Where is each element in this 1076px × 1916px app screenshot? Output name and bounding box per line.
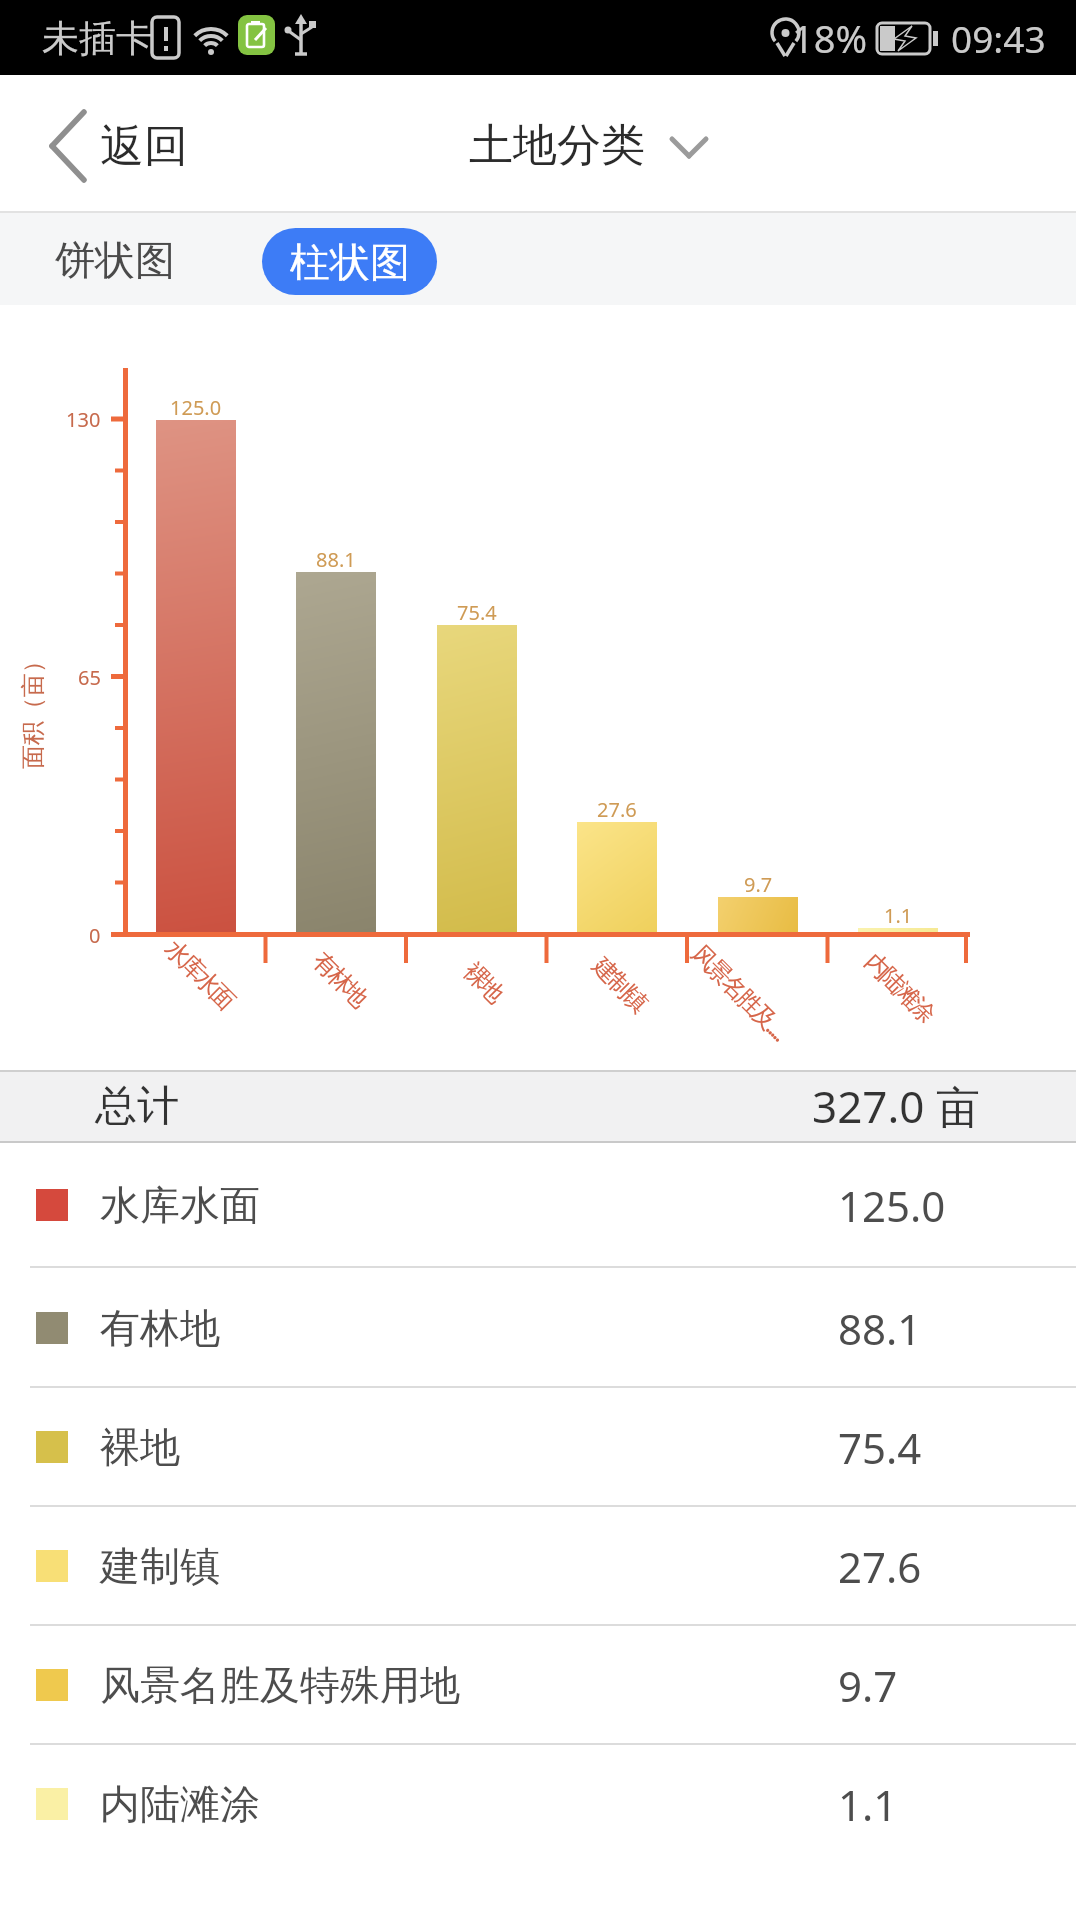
staticText: 327.0 亩	[812, 1076, 980, 1136]
staticText: 柱状图	[290, 237, 410, 287]
staticText: 65	[78, 664, 101, 691]
staticText: 有林地	[308, 947, 373, 1013]
button[interactable]	[30, 105, 230, 185]
staticText: 裸地	[458, 957, 509, 1008]
staticText: 9.7	[744, 871, 773, 898]
button[interactable]: 风景名胜及特殊用地	[0, 1626, 1076, 1745]
staticText: 裸地	[100, 1422, 180, 1472]
button[interactable]: 柱状图	[262, 228, 437, 295]
staticText: 总计	[95, 1080, 179, 1133]
staticText: 1.1	[838, 1776, 898, 1833]
staticText: 内陆滩涂	[100, 1779, 260, 1829]
staticText: 建制镇	[588, 952, 653, 1018]
button[interactable]: 裸地	[0, 1388, 1076, 1507]
staticText: 未插卡	[42, 15, 153, 62]
staticText: 130	[66, 406, 101, 433]
staticText: 27.6	[597, 796, 637, 823]
button[interactable]: 建制镇	[0, 1507, 1076, 1626]
staticText: 内陆滩涂	[860, 948, 940, 1028]
staticText: 有林地	[100, 1303, 220, 1353]
staticText: 水库水面	[160, 935, 240, 1015]
staticText: 27.6	[838, 1538, 922, 1595]
staticText: 09:43	[951, 13, 1046, 63]
staticText: 返回	[100, 119, 188, 174]
staticText: 1.1	[884, 902, 913, 929]
button[interactable]: 有林地	[0, 1268, 1076, 1388]
button[interactable]: 饼状图	[45, 227, 185, 293]
staticText: 18%	[792, 12, 868, 64]
staticText: 125.0	[170, 394, 222, 421]
staticText: 88.1	[838, 1300, 922, 1357]
staticText: 0	[89, 922, 101, 949]
staticText: 75.4	[838, 1419, 922, 1476]
button[interactable]	[440, 105, 730, 185]
staticText: 水库水面	[100, 1180, 260, 1230]
staticText: 面积（亩）	[18, 649, 48, 769]
staticText: 88.1	[316, 546, 356, 573]
staticText: 饼状图	[55, 235, 175, 285]
staticText: 风景名胜及特殊用地	[100, 1660, 460, 1710]
staticText: 9.7	[838, 1657, 898, 1714]
button[interactable]: 水库水面	[0, 1143, 1076, 1268]
staticText: 125.0	[838, 1177, 946, 1234]
staticText: 风景名胜及.....	[685, 936, 796, 1047]
staticText: 建制镇	[100, 1541, 220, 1591]
staticText: 土地分类	[469, 118, 645, 173]
staticText: 75.4	[457, 599, 497, 626]
button[interactable]: 内陆滩涂	[0, 1745, 1076, 1863]
